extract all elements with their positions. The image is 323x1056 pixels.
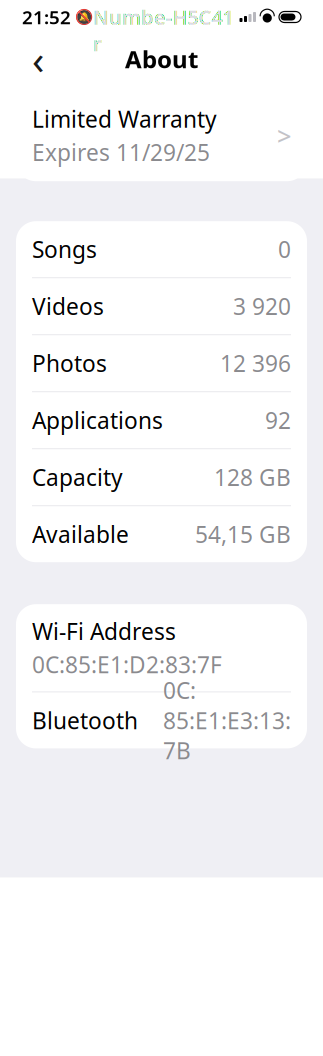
button[interactable]: Songs (16, 221, 307, 277)
staticText: 🔕 (75, 9, 93, 25)
staticText: Wi-Fi Address (32, 616, 176, 646)
staticText: ‹ (32, 32, 44, 85)
button[interactable]: Capacity (16, 449, 307, 505)
staticText: Expires 11/29/25 (32, 137, 210, 167)
staticText: > (277, 119, 291, 152)
button[interactable]: Back (16, 37, 60, 81)
button[interactable]: Available (16, 506, 307, 562)
staticText: 0C:85:E1:D2:83:7F (32, 649, 222, 679)
staticText: Photos (32, 348, 107, 378)
staticText: Available (32, 519, 129, 549)
staticText: 12 396 (220, 348, 291, 378)
staticText: Limited Warranty (32, 104, 217, 134)
button[interactable]: Wi-Fi Address (16, 604, 307, 691)
staticText: H5C41 (172, 4, 233, 30)
staticText: 3 920 (233, 291, 291, 321)
staticText: Bluetooth (32, 705, 138, 735)
staticText: Number (93, 0, 172, 57)
staticText: 92 (265, 405, 291, 435)
staticText: Songs (32, 234, 97, 264)
button[interactable]: Videos (16, 278, 307, 334)
staticText: 0 (278, 234, 291, 264)
staticText: Capacity (32, 462, 123, 492)
button[interactable]: Photos (16, 335, 307, 391)
staticText: Videos (32, 291, 104, 321)
staticText: 128 GB (214, 462, 291, 492)
button[interactable]: Limited Warranty (16, 90, 307, 181)
staticText: 54,15 GB (195, 519, 291, 549)
staticText: 0C:85:E1:E3:13:7B (163, 675, 291, 766)
button[interactable]: Bluetooth (16, 692, 307, 748)
button[interactable]: Applications (16, 392, 307, 448)
staticText: Applications (32, 405, 163, 435)
